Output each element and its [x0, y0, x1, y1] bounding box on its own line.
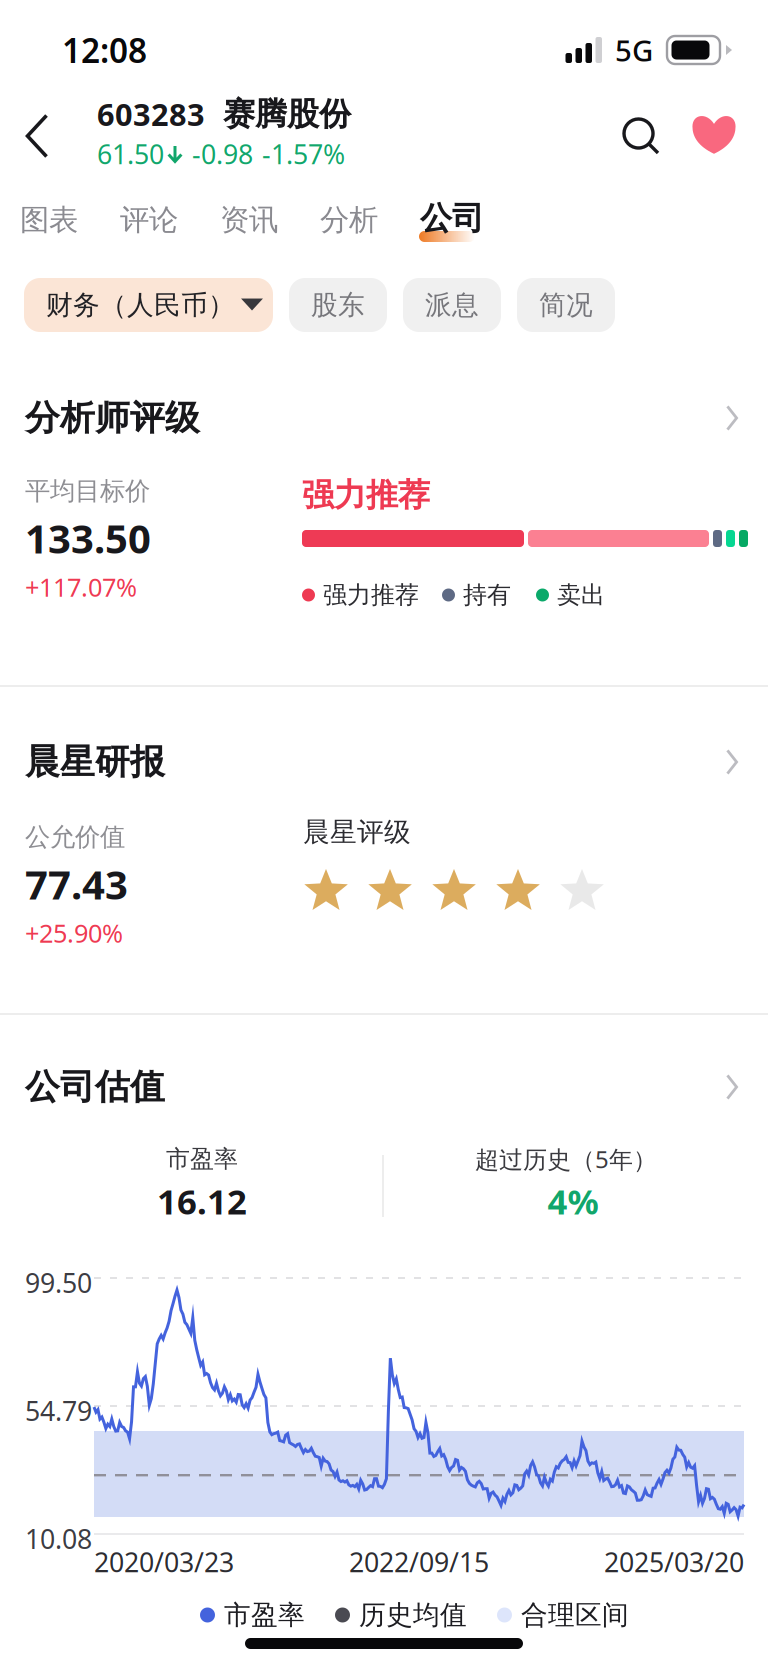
staticText: 公允价值	[25, 821, 125, 852]
button[interactable]: 分析师评级	[0, 396, 768, 440]
staticText: 评论	[120, 202, 178, 238]
staticText: 图表	[20, 202, 78, 238]
staticText: 卖出	[557, 580, 605, 610]
staticText: 54.79	[25, 1393, 92, 1428]
staticText: 派息	[425, 289, 479, 321]
staticText: 持有	[463, 580, 511, 610]
button[interactable]: 公司	[420, 186, 520, 248]
button[interactable]: 股东	[289, 278, 387, 332]
button[interactable]: 财务（人民币）	[24, 278, 273, 332]
staticText: 合理区间	[521, 1599, 629, 1631]
staticText: 133.50	[25, 511, 151, 564]
staticText: 16.12	[157, 1178, 247, 1224]
staticText: +25.90%	[25, 916, 123, 950]
staticText: 超过历史（5年）	[475, 1143, 657, 1175]
staticText: 分析师评级	[25, 397, 200, 439]
staticText: 公司估值	[25, 1066, 165, 1108]
button[interactable]: 分析	[320, 186, 420, 248]
staticText: 赛腾股份	[223, 94, 351, 134]
staticText: 股东	[311, 289, 365, 321]
staticText: +117.07%	[25, 570, 137, 604]
staticText: 10.08	[25, 1521, 92, 1556]
staticText: 4%	[547, 1178, 598, 1224]
staticText: 2022/09/15	[349, 1544, 489, 1580]
staticText: 晨星评级	[303, 816, 411, 848]
staticText: -1.57%	[262, 136, 345, 172]
staticText: 市盈率	[166, 1144, 238, 1174]
staticText: 强力推荐	[323, 580, 419, 610]
staticText: 平均目标价	[25, 475, 150, 506]
staticText: 5G	[615, 30, 653, 69]
staticText: 公司	[420, 199, 484, 238]
staticText: 77.43	[25, 857, 128, 910]
staticText: 2025/03/20	[604, 1544, 744, 1580]
button[interactable]: 资讯	[220, 186, 320, 248]
staticText: 分析	[320, 202, 378, 238]
staticText: 61.50	[97, 136, 164, 172]
staticText: 简况	[539, 289, 593, 321]
staticText: 99.50	[25, 1265, 92, 1300]
staticText: 财务（人民币）	[46, 289, 235, 321]
staticText: 强力推荐	[302, 475, 430, 515]
staticText: -0.98	[192, 136, 253, 172]
staticText: 晨星研报	[25, 741, 165, 783]
button[interactable]: Add to watchlist	[690, 110, 738, 158]
staticText: 603283	[97, 94, 205, 134]
staticText: 12:08	[62, 28, 147, 72]
staticText: 资讯	[220, 202, 278, 238]
button[interactable]: 派息	[403, 278, 501, 332]
button[interactable]: 图表	[20, 186, 120, 248]
staticText: 历史均值	[359, 1599, 467, 1631]
button[interactable]: Back	[4, 104, 70, 168]
button[interactable]: 简况	[517, 278, 615, 332]
button[interactable]: 公司估值	[0, 1065, 768, 1109]
staticText: 市盈率	[224, 1599, 305, 1631]
button[interactable]: 评论	[120, 186, 220, 248]
button[interactable]: Search	[612, 107, 670, 165]
staticText: 2020/03/23	[94, 1544, 234, 1580]
button[interactable]: 晨星研报	[0, 740, 768, 784]
